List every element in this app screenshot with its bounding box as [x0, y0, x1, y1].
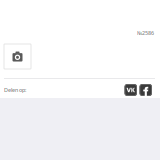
staticText: №2586 — [137, 29, 154, 37]
button[interactable]: Share on VK — [124, 84, 137, 96]
button[interactable]: Share on Facebook — [139, 84, 152, 96]
button[interactable]: Product photo — [4, 44, 31, 69]
staticText: Delen op: — [4, 86, 26, 94]
